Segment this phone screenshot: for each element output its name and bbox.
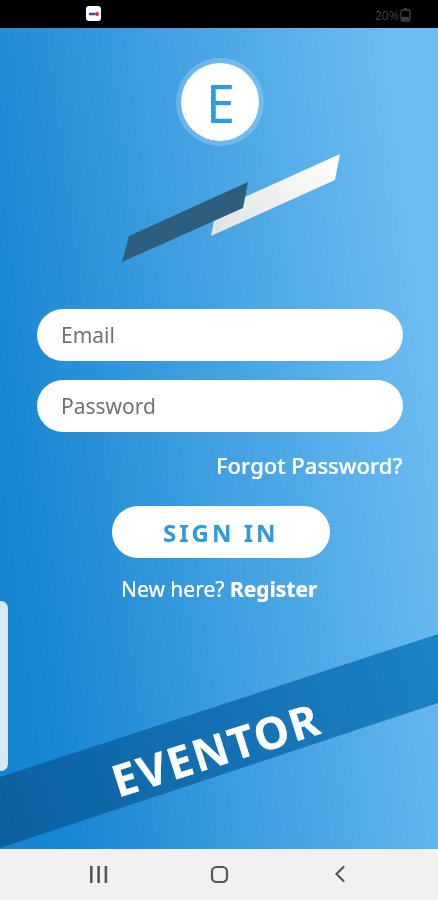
staticText: SIGN IN	[163, 516, 279, 549]
button[interactable]	[195, 850, 243, 898]
button[interactable]	[74, 850, 122, 898]
staticText: New here?	[121, 575, 230, 604]
staticText: E	[206, 67, 235, 138]
button[interactable]: Password	[37, 380, 403, 432]
staticText: Forgot Password?	[216, 450, 403, 480]
staticText: Register	[230, 575, 318, 604]
button[interactable]: Forgot Password?	[216, 450, 403, 480]
staticText: Email	[61, 321, 115, 350]
button[interactable]	[316, 850, 364, 898]
button[interactable]: Email	[37, 309, 403, 361]
button[interactable]: SIGN IN	[112, 506, 330, 558]
button[interactable]: Register	[230, 575, 318, 604]
staticText: Password	[61, 392, 156, 421]
staticText: EVENTOR	[104, 688, 328, 810]
staticText: 20%	[375, 7, 399, 23]
